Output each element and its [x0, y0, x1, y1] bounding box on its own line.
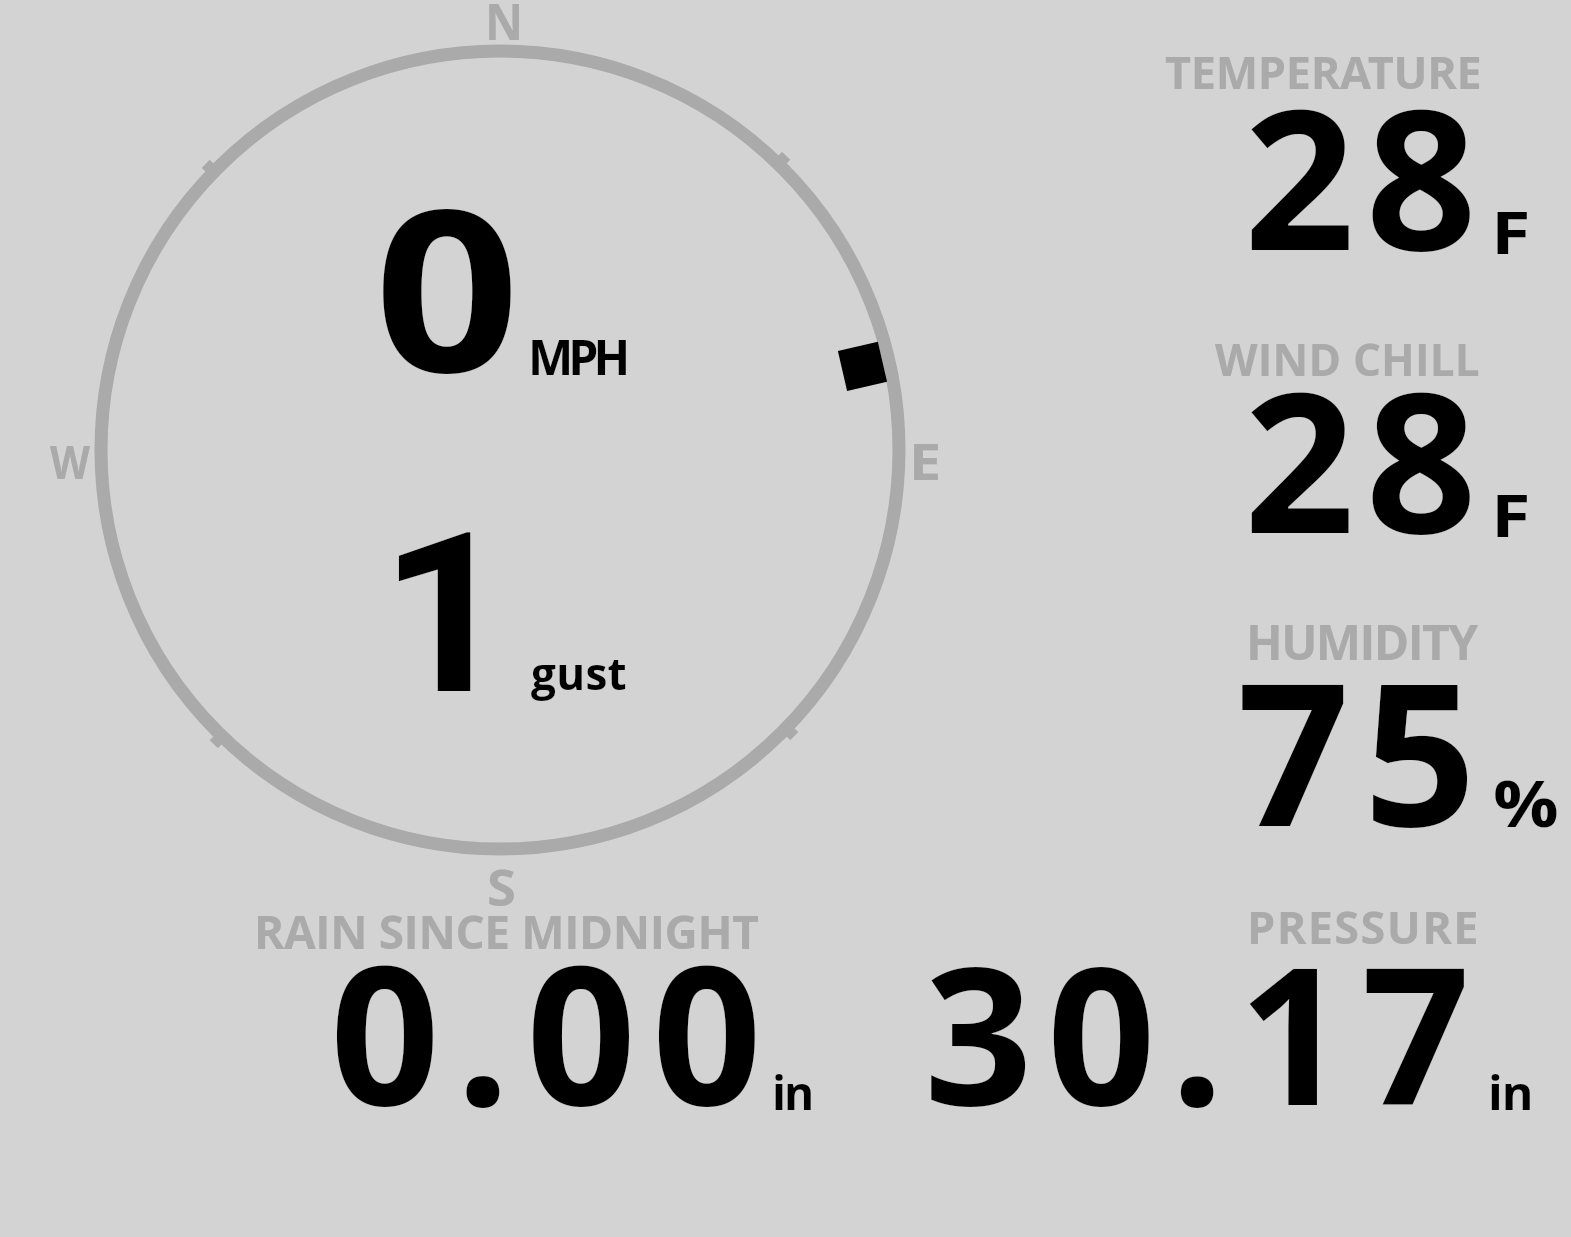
staticText: F — [1491, 191, 1531, 271]
staticText: 75 — [1237, 615, 1490, 883]
button[interactable]: Humidity 75 percent — [1100, 610, 1560, 845]
staticText: PRESSURE — [1247, 896, 1480, 957]
staticText: HUMIDITY — [1246, 609, 1477, 674]
staticText: 0 — [374, 133, 520, 438]
staticText: 0.00 — [330, 900, 778, 1161]
button[interactable]: Pressure 30.17 inches — [880, 900, 1560, 1125]
staticText: 28 — [1244, 326, 1488, 590]
staticText: E — [909, 425, 942, 494]
staticText: % — [1493, 759, 1559, 846]
staticText: in — [1488, 1061, 1533, 1124]
button[interactable]: Wind: 0 miles per hour, gusting 1, from … — [60, 20, 940, 900]
button[interactable]: Rain since midnight 0.00 inches — [220, 900, 840, 1125]
staticText: gust — [531, 643, 627, 703]
staticText: WIND CHILL — [1215, 329, 1480, 389]
staticText: S — [487, 851, 517, 920]
button[interactable]: Temperature 28 degrees Fahrenheit — [1100, 40, 1560, 270]
staticText: in — [772, 1061, 813, 1124]
staticText: RAIN SINCE MIDNIGHT — [254, 900, 759, 963]
staticText: 28 — [1244, 43, 1488, 307]
staticText: 1 — [380, 485, 513, 745]
staticText: W — [50, 429, 90, 493]
staticText: F — [1491, 474, 1531, 554]
staticText: 30.17 — [924, 902, 1485, 1161]
staticText: N — [485, 0, 524, 54]
staticText: TEMPERATURE — [1165, 41, 1482, 102]
button[interactable]: Wind chill 28 degrees Fahrenheit — [1100, 325, 1560, 555]
staticText: MPH — [528, 324, 626, 389]
